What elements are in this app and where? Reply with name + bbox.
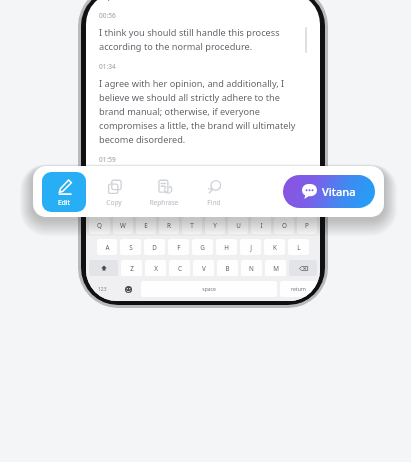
staticText: I think we should deal with it quickly — [99, 170, 256, 183]
staticText: Z — [130, 264, 134, 273]
staticText: Copy — [106, 198, 122, 207]
staticText: 00:56 — [99, 11, 116, 20]
button[interactable]: R — [159, 217, 179, 234]
button[interactable]: Edit — [42, 172, 86, 212]
button[interactable]: V — [193, 260, 214, 276]
button[interactable]: D — [144, 239, 165, 255]
staticText: N — [249, 264, 254, 273]
button[interactable]: Z — [121, 260, 142, 276]
staticText: equivalent to... — [99, 0, 163, 2]
button[interactable]: H — [216, 239, 237, 255]
staticText: 123 — [98, 286, 107, 293]
button[interactable]: P — [297, 217, 317, 234]
staticText: A — [105, 243, 110, 252]
staticText: L — [297, 243, 301, 252]
staticText: I — [260, 221, 263, 230]
button[interactable]: W — [113, 217, 133, 234]
button[interactable]: L — [288, 239, 309, 255]
button[interactable]: space — [141, 281, 277, 297]
button[interactable]: Vitana — [283, 175, 375, 208]
staticText: I think you should still handle this pro… — [99, 26, 307, 53]
staticText: C — [178, 264, 182, 273]
button[interactable]: I — [251, 217, 271, 234]
staticText: D — [152, 243, 157, 252]
button[interactable]: F — [168, 239, 189, 255]
button[interactable]: B — [217, 260, 238, 276]
staticText: O — [282, 221, 287, 230]
staticText: M — [273, 264, 279, 273]
staticText: W — [120, 221, 126, 230]
button[interactable]: X — [145, 260, 166, 276]
button[interactable]: return — [280, 281, 317, 297]
staticText: 01:59 — [99, 155, 116, 164]
staticText: K — [273, 243, 277, 252]
staticText: space — [202, 286, 216, 293]
button[interactable]: K — [264, 239, 285, 255]
staticText: Vitana — [322, 184, 356, 199]
button[interactable]: A — [97, 239, 117, 255]
staticText: E — [144, 221, 148, 230]
staticText: Q — [97, 221, 102, 230]
staticText: U — [236, 221, 241, 230]
staticText: Edit — [58, 198, 70, 207]
staticText: V — [202, 264, 206, 273]
button[interactable]: N — [241, 260, 262, 276]
button[interactable]: T — [182, 217, 202, 234]
staticText: X — [154, 264, 158, 273]
button[interactable]: Find — [192, 172, 236, 212]
staticText: Find — [207, 198, 221, 207]
staticText: F — [177, 243, 181, 252]
staticText: 01:34 — [99, 62, 116, 71]
button[interactable]: Shift — [89, 260, 118, 276]
staticText: J — [250, 243, 252, 252]
button[interactable]: J — [240, 239, 261, 255]
button[interactable]: G — [192, 239, 213, 255]
button[interactable]: Rephrase — [142, 172, 186, 212]
button[interactable]: Q — [89, 217, 110, 234]
button[interactable]: Y — [205, 217, 225, 234]
staticText: B — [225, 264, 230, 273]
button[interactable]: O — [274, 217, 294, 234]
staticText: G — [200, 243, 205, 252]
button[interactable]: Backspace — [289, 260, 317, 276]
button[interactable]: E — [136, 217, 156, 234]
staticText: Y — [213, 221, 217, 230]
button[interactable]: S — [120, 239, 141, 255]
staticText: T — [190, 221, 194, 230]
staticText: P — [305, 221, 309, 230]
staticText: I agree with her opinion, and additional… — [99, 77, 307, 146]
staticText: H — [224, 243, 229, 252]
staticText: R — [167, 221, 171, 230]
button[interactable]: U — [228, 217, 248, 234]
staticText: S — [129, 243, 133, 252]
button[interactable]: M — [265, 260, 286, 276]
staticText: Rephrase — [149, 198, 179, 207]
button[interactable]: Emoji — [119, 281, 138, 297]
button[interactable]: C — [169, 260, 190, 276]
staticText: return — [291, 286, 306, 293]
button[interactable]: Copy — [92, 172, 136, 212]
button[interactable]: Numbers — [89, 281, 116, 297]
